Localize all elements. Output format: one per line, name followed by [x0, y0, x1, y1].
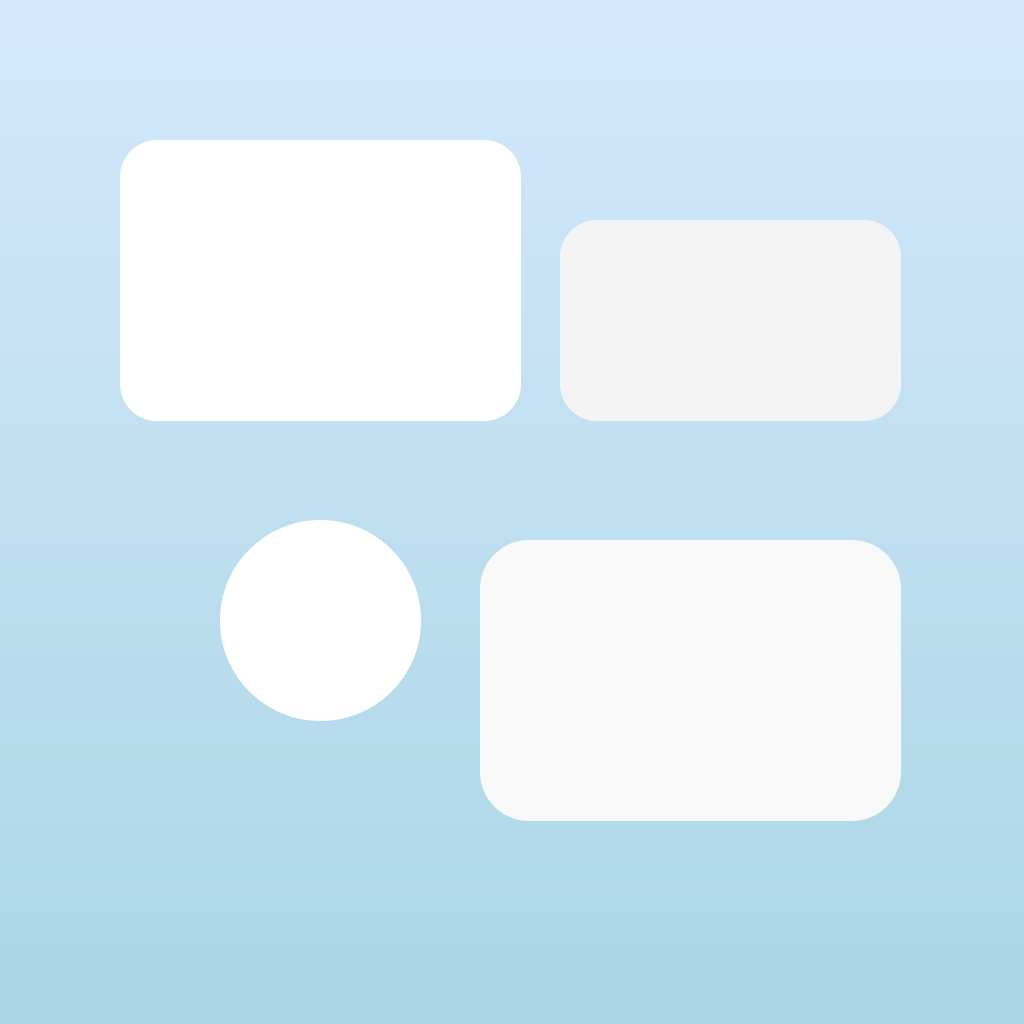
button[interactable]: Medium widget: [560, 220, 901, 421]
button[interactable]: Large widget: [120, 140, 521, 421]
button[interactable]: Detail widget: [480, 540, 901, 821]
button[interactable]: Round widget: [220, 520, 421, 721]
